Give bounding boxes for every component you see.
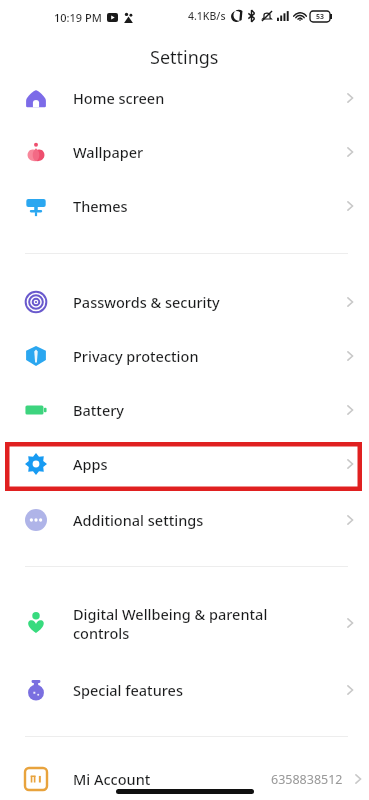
staticText: 4.1KB/s <box>188 9 226 23</box>
staticText: Mi Account <box>73 769 271 789</box>
staticText: Additional settings <box>73 510 343 530</box>
button[interactable]: Themes <box>0 179 369 233</box>
staticText: Wallpaper <box>73 142 343 162</box>
staticText: Battery <box>73 400 343 420</box>
staticText: Themes <box>73 196 343 216</box>
staticText: Digital Wellbeing & parental controls <box>73 604 343 643</box>
staticText: Privacy protection <box>73 346 343 366</box>
button[interactable]: Passwords & security <box>0 275 369 329</box>
button[interactable]: Privacy protection <box>0 329 369 383</box>
button[interactable]: Special features <box>0 663 369 717</box>
staticText: 10:19 PM <box>54 10 102 25</box>
staticText: Passwords & security <box>73 292 343 312</box>
staticText: Apps <box>73 454 343 474</box>
staticText: Settings <box>150 45 219 70</box>
button[interactable]: Apps <box>0 437 369 491</box>
button[interactable]: Mi Account <box>0 758 369 800</box>
button[interactable]: Additional settings <box>0 493 369 547</box>
staticText: Home screen <box>73 88 343 108</box>
staticText: Special features <box>73 680 343 700</box>
button[interactable]: Battery <box>0 383 369 437</box>
staticText: 53 <box>316 12 325 22</box>
staticText: 6358838512 <box>271 771 343 788</box>
button[interactable]: Wallpaper <box>0 125 369 179</box>
button[interactable]: Home screen <box>0 71 369 125</box>
button[interactable]: Digital Wellbeing & parental controls <box>0 588 369 658</box>
